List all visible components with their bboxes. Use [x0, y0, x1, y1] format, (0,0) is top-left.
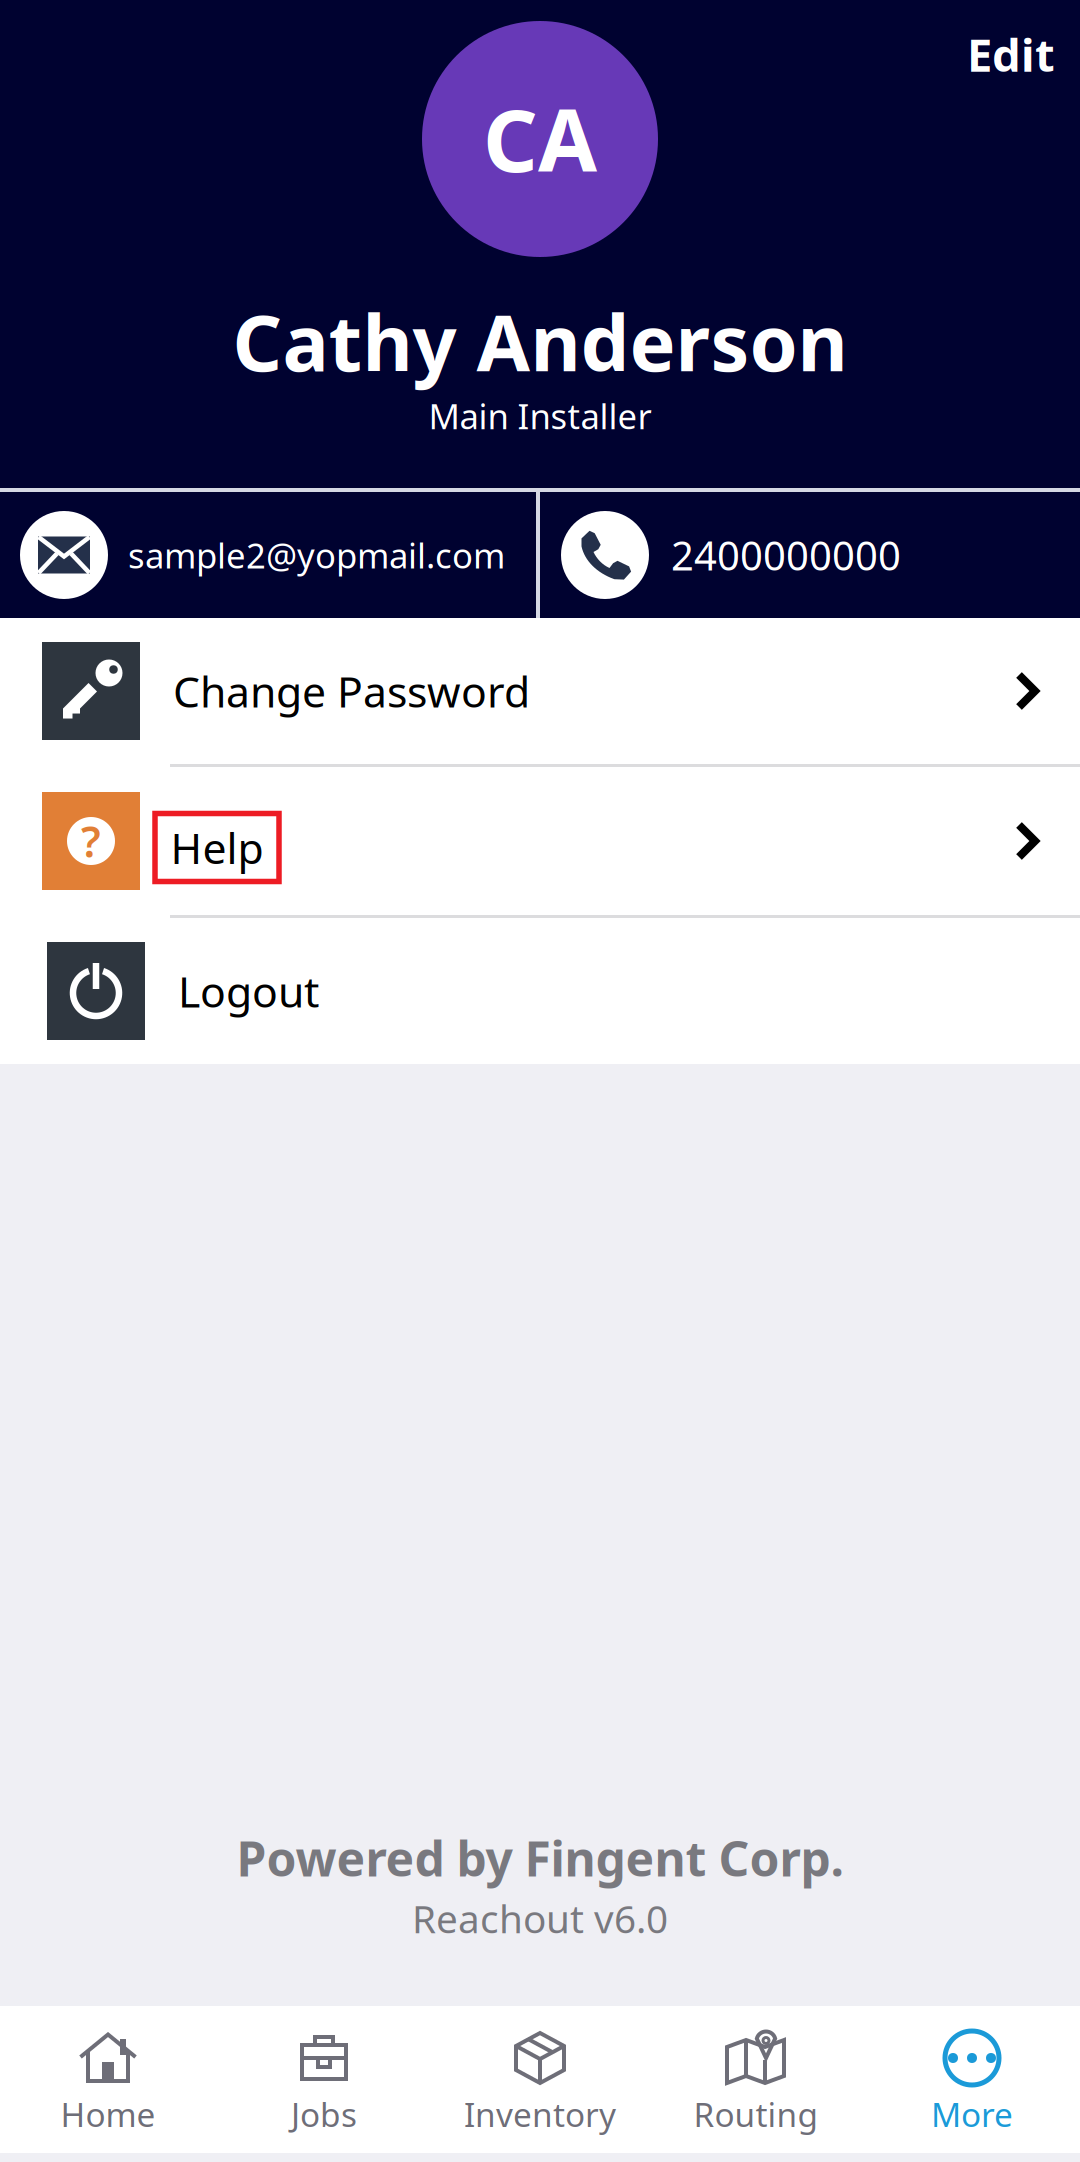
staticText: Change Password — [173, 663, 530, 719]
staticText: 2400000000 — [671, 528, 901, 581]
staticText: Edit — [967, 24, 1055, 84]
staticText: ? — [81, 813, 101, 869]
button[interactable]: Change Password — [0, 618, 1080, 764]
staticText: More — [931, 2092, 1013, 2136]
button[interactable]: 2400000000 — [540, 492, 1080, 618]
button[interactable]: Routing — [648, 2006, 864, 2153]
staticText: sample2@yopmail.com — [128, 532, 505, 578]
button[interactable]: Edit — [939, 0, 1080, 104]
staticText: Help — [170, 819, 263, 876]
staticText: Routing — [693, 2092, 818, 2136]
staticText: Powered by Fingent Corp. — [236, 1826, 843, 1890]
button[interactable]: Logout — [0, 918, 1080, 1064]
staticText: Cathy Anderson — [232, 290, 847, 393]
staticText: CA — [483, 82, 597, 196]
staticText: Jobs — [291, 2092, 357, 2136]
staticText: Reachout v6.0 — [412, 1893, 668, 1944]
button[interactable]: Jobs — [216, 2006, 432, 2153]
button[interactable]: Inventory — [432, 2006, 648, 2153]
staticText: Logout — [178, 963, 319, 1019]
staticText: Inventory — [464, 2092, 616, 2136]
button[interactable]: More — [864, 2006, 1080, 2153]
staticText: Main Installer — [428, 393, 651, 439]
button[interactable]: sample2@yopmail.com — [0, 492, 536, 618]
button[interactable]: ? — [0, 767, 1080, 915]
staticText: Home — [60, 2092, 155, 2136]
button[interactable]: Home — [0, 2006, 216, 2153]
